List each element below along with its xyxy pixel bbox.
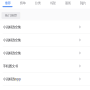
button[interactable]: 漫画: [60, 0, 75, 9]
button[interactable]: 小说精选app: [0, 73, 90, 86]
staticText: 小说精选全集: [3, 38, 21, 42]
button[interactable]: 推荐: [0, 0, 15, 9]
button[interactable]: 书架: [45, 0, 60, 9]
staticText: 分类: [34, 1, 40, 5]
staticText: 书架: [49, 1, 55, 5]
staticText: 手机图文书: [3, 64, 18, 68]
staticText: 漫画: [64, 1, 70, 5]
button[interactable]: 小说精选全集: [0, 47, 90, 60]
staticText: 榜单: [19, 1, 25, 5]
staticText: 小说精选app: [3, 77, 21, 81]
button[interactable]: 榜单: [15, 0, 30, 9]
button[interactable]: 小说精选全集: [0, 34, 90, 47]
staticText: 推荐: [4, 1, 10, 5]
button[interactable]: 小说精选全集: [0, 21, 90, 34]
button[interactable]: 我的: [75, 0, 90, 9]
staticText: 我的: [79, 1, 85, 5]
staticText: 小说精选全集: [3, 25, 21, 29]
staticText: 小说精选全集: [3, 51, 21, 55]
button[interactable]: 手机图文书: [0, 60, 90, 73]
staticText: 热门推荐: [5, 13, 17, 17]
button[interactable]: 分类: [30, 0, 45, 9]
